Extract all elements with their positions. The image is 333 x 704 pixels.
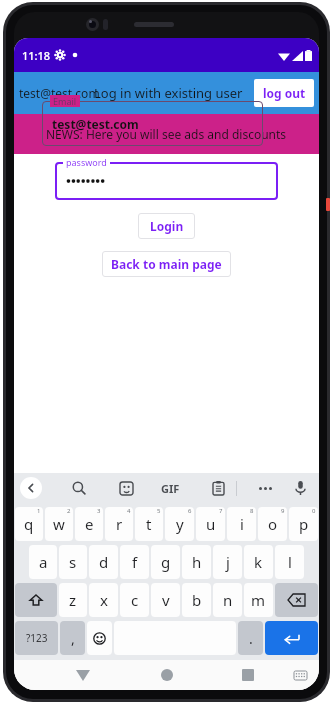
button[interactable]: GIF bbox=[161, 481, 180, 496]
staticText: NEWS: Here you will see ads and discount… bbox=[46, 126, 287, 142]
button[interactable]: Enter bbox=[265, 621, 318, 655]
staticText: v bbox=[162, 590, 170, 610]
button[interactable]: Voice input bbox=[289, 477, 311, 499]
button[interactable]: Backspace bbox=[275, 583, 318, 617]
button[interactable]: r bbox=[105, 507, 133, 541]
button[interactable]: t bbox=[135, 507, 163, 541]
staticText: Login bbox=[150, 218, 184, 234]
button[interactable]: Recent apps bbox=[235, 662, 261, 688]
staticText: 1 bbox=[37, 507, 41, 515]
staticText: f bbox=[132, 552, 138, 572]
staticText: u bbox=[206, 514, 216, 534]
staticText: test@test.com bbox=[19, 85, 100, 101]
staticText: t bbox=[146, 514, 152, 534]
staticText: m bbox=[251, 590, 266, 610]
staticText: n bbox=[223, 590, 233, 610]
staticText: ?123 bbox=[26, 631, 48, 645]
staticText: 0 bbox=[312, 507, 316, 515]
button[interactable]: q bbox=[15, 507, 43, 541]
staticText: p bbox=[299, 514, 309, 534]
button[interactable]: Back bbox=[70, 662, 96, 688]
button[interactable]: ?123 bbox=[15, 621, 58, 655]
staticText: , bbox=[71, 629, 75, 648]
staticText: Log in with existing user bbox=[94, 84, 243, 102]
staticText: 7 bbox=[219, 507, 223, 515]
staticText: q bbox=[24, 514, 34, 534]
button[interactable]: Shift bbox=[15, 583, 57, 617]
button[interactable]: Search bbox=[68, 477, 90, 499]
staticText: l bbox=[288, 552, 292, 572]
button[interactable]: More options bbox=[252, 477, 278, 499]
button[interactable]: Login bbox=[138, 213, 195, 239]
button[interactable]: k bbox=[244, 545, 273, 579]
staticText: 5 bbox=[157, 507, 161, 515]
button[interactable]: o bbox=[258, 507, 287, 541]
button[interactable]: w bbox=[45, 507, 73, 541]
button[interactable]: log out bbox=[254, 79, 314, 107]
button[interactable]: g bbox=[151, 545, 180, 579]
staticText: 9 bbox=[281, 507, 285, 515]
staticText: 8 bbox=[250, 507, 254, 515]
button[interactable]: l bbox=[275, 545, 304, 579]
button[interactable]: , bbox=[60, 621, 85, 655]
staticText: •••••••• bbox=[66, 172, 106, 190]
staticText: d bbox=[99, 552, 109, 572]
button[interactable]: z bbox=[59, 583, 87, 617]
staticText: s bbox=[69, 552, 77, 572]
button[interactable]: u bbox=[196, 507, 225, 541]
staticText: a bbox=[39, 552, 48, 572]
staticText: c bbox=[131, 590, 139, 610]
staticText: 11:18 bbox=[22, 48, 51, 63]
staticText: 6 bbox=[188, 507, 192, 515]
button[interactable]: n bbox=[213, 583, 242, 617]
button[interactable]: m bbox=[244, 583, 273, 617]
staticText: log out bbox=[263, 85, 306, 101]
staticText: 2 bbox=[67, 507, 71, 515]
button[interactable]: x bbox=[89, 583, 118, 617]
button[interactable]: f bbox=[120, 545, 149, 579]
button[interactable]: test@test.com bbox=[42, 101, 263, 146]
button[interactable]: j bbox=[213, 545, 242, 579]
button[interactable]: h bbox=[182, 545, 211, 579]
staticText: Email bbox=[53, 95, 77, 107]
staticText: r bbox=[116, 514, 123, 534]
staticText: i bbox=[240, 514, 244, 534]
staticText: o bbox=[268, 514, 278, 534]
button[interactable]: y bbox=[165, 507, 194, 541]
button[interactable]: Stickers bbox=[115, 477, 137, 499]
button[interactable]: Switch keyboard bbox=[289, 664, 311, 686]
staticText: b bbox=[192, 590, 202, 610]
staticText: y bbox=[176, 514, 184, 534]
button[interactable]: i bbox=[227, 507, 256, 541]
staticText: j bbox=[226, 552, 230, 572]
button[interactable]: Back bbox=[20, 477, 42, 499]
button[interactable]: Home bbox=[154, 662, 180, 688]
button[interactable]: v bbox=[151, 583, 180, 617]
staticText: test@test.com bbox=[52, 116, 139, 132]
button[interactable]: c bbox=[120, 583, 149, 617]
button[interactable]: •••••••• bbox=[55, 162, 278, 200]
staticText: z bbox=[69, 590, 77, 610]
staticText: w bbox=[53, 514, 65, 534]
button[interactable]: e bbox=[75, 507, 103, 541]
staticText: password bbox=[66, 156, 107, 168]
button[interactable]: Emoji bbox=[87, 621, 112, 655]
staticText: h bbox=[192, 552, 202, 572]
button[interactable]: Clipboard bbox=[207, 477, 229, 499]
staticText: Back to main page bbox=[111, 256, 222, 272]
staticText: e bbox=[85, 514, 94, 534]
button[interactable]: b bbox=[182, 583, 211, 617]
staticText: 3 bbox=[97, 507, 101, 515]
staticText: g bbox=[161, 552, 171, 572]
staticText: . bbox=[249, 629, 253, 648]
button[interactable]: d bbox=[89, 545, 118, 579]
button[interactable]: p bbox=[289, 507, 318, 541]
staticText: x bbox=[100, 590, 108, 610]
staticText: k bbox=[254, 552, 263, 572]
button[interactable]: . bbox=[238, 621, 263, 655]
staticText: 4 bbox=[127, 507, 131, 515]
button[interactable]: s bbox=[59, 545, 87, 579]
button[interactable]: Back to main page bbox=[102, 251, 231, 277]
button[interactable]: a bbox=[29, 545, 57, 579]
